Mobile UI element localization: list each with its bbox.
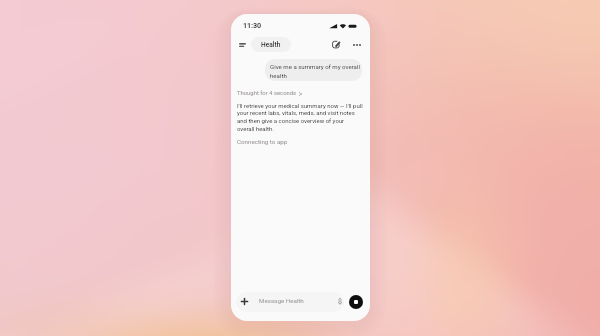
button[interactable]: Health [251, 37, 291, 52]
staticText: 11:30 [243, 21, 262, 29]
staticText: Message Health [259, 297, 304, 304]
button[interactable]: Add attachment [238, 295, 251, 308]
button[interactable]: More options [349, 37, 364, 52]
button[interactable]: Give me a summary of my overall health [265, 59, 362, 81]
staticText: I'll retrieve your medical summary now —… [237, 102, 363, 133]
button[interactable]: Stop generating [349, 295, 363, 309]
staticText: Thought for 4 seconds [237, 90, 297, 97]
button[interactable] [236, 292, 344, 312]
staticText: Give me a summary of my overall health [270, 63, 362, 80]
button[interactable]: Thought for 4 seconds [235, 89, 304, 98]
button[interactable]: Menu [236, 38, 249, 51]
staticText: Health [261, 41, 281, 49]
button[interactable]: Voice input [334, 295, 346, 307]
button[interactable]: New chat [330, 38, 343, 51]
staticText: Connecting to app [237, 138, 288, 145]
